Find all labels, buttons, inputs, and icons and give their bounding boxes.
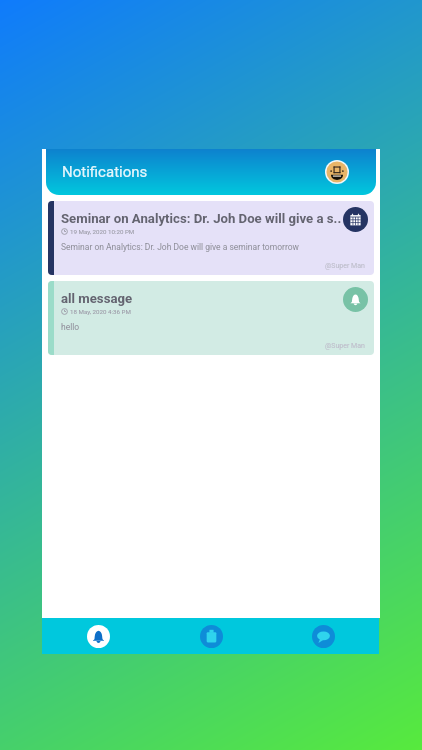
staticText: 18 May, 2020 4:36 PM bbox=[70, 308, 131, 315]
staticText: Seminar on Analytics: Dr. Joh Doe will g… bbox=[61, 242, 299, 252]
button[interactable]: Notifications bbox=[42, 618, 155, 654]
button[interactable]: Seminar on Analytics: Dr. Joh Doe will g… bbox=[48, 201, 374, 275]
staticText: 19 May, 2020 10:20 PM bbox=[70, 228, 135, 235]
staticText: Notifications bbox=[62, 163, 148, 181]
staticText: all message bbox=[61, 291, 133, 306]
button[interactable]: Profile bbox=[325, 160, 349, 184]
staticText: @Super Man bbox=[325, 262, 365, 270]
button[interactable]: all message bbox=[48, 281, 374, 355]
button[interactable]: Messages bbox=[267, 618, 379, 654]
staticText: hello bbox=[61, 322, 80, 332]
staticText: Seminar on Analytics: Dr. Joh Doe will g… bbox=[61, 211, 342, 226]
button[interactable]: Tasks bbox=[155, 618, 267, 654]
staticText: @Super Man bbox=[325, 342, 365, 350]
